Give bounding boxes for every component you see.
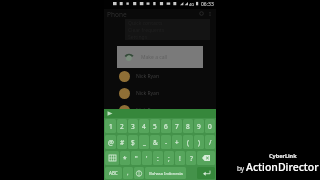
staticText: :	[157, 154, 159, 163]
button[interactable]: ABC	[105, 167, 122, 179]
staticText: -	[165, 138, 168, 147]
staticText: 4G	[189, 2, 195, 7]
staticText: 7	[175, 122, 179, 131]
staticText: Make a call	[141, 54, 168, 61]
staticText: *	[123, 154, 127, 163]
staticText: ,	[127, 169, 129, 177]
button[interactable]: Enter	[197, 167, 215, 179]
staticText: /	[209, 138, 212, 147]
staticText: Nick Ryan	[136, 90, 160, 97]
button[interactable]: 2	[117, 119, 127, 133]
button[interactable]: &	[150, 135, 160, 149]
button[interactable]: 1	[105, 119, 116, 133]
button[interactable]: "	[131, 151, 141, 165]
button[interactable]: Nick Ryan	[104, 102, 216, 119]
button[interactable]: 4	[139, 119, 149, 133]
staticText: ;	[168, 154, 170, 163]
button[interactable]: Make a call	[117, 46, 203, 68]
button[interactable]: +	[172, 135, 182, 149]
staticText: 0	[208, 122, 212, 131]
staticText: 9	[197, 122, 201, 131]
button[interactable]: ?	[186, 151, 196, 165]
staticText: Nick Ryan	[136, 73, 160, 80]
staticText: (	[187, 138, 189, 147]
button[interactable]: 6	[161, 119, 171, 133]
button[interactable]: ,	[123, 167, 133, 179]
button[interactable]: ;	[164, 151, 174, 165]
staticText: ?	[190, 154, 193, 163]
staticText: 8	[186, 122, 190, 131]
button[interactable]: #	[117, 135, 127, 149]
staticText: ABC	[109, 170, 118, 176]
button[interactable]: 8	[183, 119, 193, 133]
button[interactable]: Nick Ryan	[104, 68, 216, 85]
button[interactable]: /	[205, 135, 215, 149]
staticText: CyberLink	[269, 152, 297, 159]
staticText: &	[153, 138, 158, 147]
button[interactable]: 3	[128, 119, 138, 133]
staticText: '	[146, 154, 148, 163]
staticText: _	[143, 138, 146, 147]
button[interactable]: 5	[150, 119, 160, 133]
button[interactable]: Backspace	[197, 151, 215, 165]
button[interactable]: *	[120, 151, 130, 165]
button[interactable]: Bahasa Indonesia	[145, 167, 186, 179]
staticText: 06:33	[201, 1, 214, 8]
button[interactable]: :	[153, 151, 163, 165]
button[interactable]: !	[175, 151, 185, 165]
staticText: 1	[109, 122, 113, 131]
button[interactable]: 7	[172, 119, 182, 133]
staticText: 2	[120, 122, 124, 131]
staticText: Phone	[107, 10, 127, 19]
button[interactable]: Search	[199, 11, 205, 17]
button[interactable]: _	[139, 135, 149, 149]
staticText: 3	[131, 122, 135, 131]
staticText: #	[120, 138, 125, 147]
staticText: ActionDirector	[246, 160, 319, 174]
button[interactable]: '	[142, 151, 152, 165]
button[interactable]: @	[105, 135, 116, 149]
staticText: Bahasa Indonesia	[149, 171, 183, 176]
button[interactable]: More options	[207, 11, 213, 17]
staticText: $	[131, 138, 135, 147]
staticText: !	[179, 154, 181, 163]
button[interactable]: Nick Ryan	[104, 85, 216, 102]
staticText: 6	[164, 122, 168, 131]
staticText: "	[135, 154, 138, 163]
button[interactable]: 9	[194, 119, 204, 133]
staticText: @	[108, 138, 114, 147]
staticText: +	[175, 138, 179, 147]
staticText: )	[198, 138, 200, 147]
button[interactable]: (	[183, 135, 193, 149]
staticText: 4	[142, 122, 146, 131]
button[interactable]: )	[194, 135, 204, 149]
staticText: Nick Ryan	[136, 107, 160, 114]
staticText: 5	[153, 122, 157, 131]
button[interactable]: -	[161, 135, 171, 149]
button[interactable]: Symbols	[105, 151, 119, 165]
button[interactable]: $	[128, 135, 138, 149]
button[interactable]: 0	[205, 119, 215, 133]
button[interactable]: Switch language	[134, 167, 144, 179]
staticText: by	[237, 164, 246, 173]
